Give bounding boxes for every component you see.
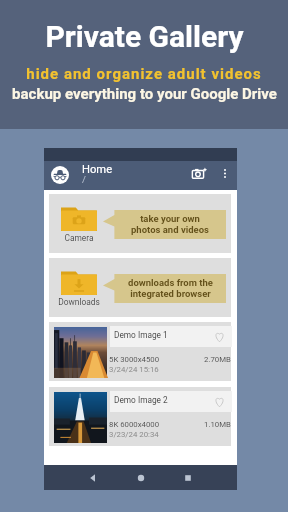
button[interactable]: Recents	[178, 468, 198, 488]
button[interactable]: Profile	[51, 166, 69, 184]
staticText: 3/24/24 15:16	[109, 365, 159, 374]
staticText: 8K 6000x4000	[109, 420, 160, 429]
staticText: /	[82, 174, 86, 185]
button[interactable]: Demo Image 2	[49, 387, 231, 446]
staticText: 2.70MB	[204, 355, 231, 364]
staticText: Private Gallery	[45, 19, 244, 54]
button[interactable]: Demo Image 1	[49, 322, 231, 381]
staticText: integrated browser	[130, 288, 211, 299]
staticText: 1.10MB	[204, 420, 231, 429]
button[interactable]: Take photo	[191, 165, 208, 182]
button[interactable]: More options	[219, 165, 231, 182]
button[interactable]: Camera	[49, 194, 231, 253]
button[interactable]: Downloads	[49, 258, 231, 317]
staticText: Demo Image 2	[114, 395, 168, 405]
staticText: hide and organize adult videos	[26, 65, 262, 83]
button[interactable]: Back	[83, 468, 103, 488]
staticText: Downloads	[58, 297, 100, 307]
button[interactable]: Favorite	[214, 331, 225, 342]
staticText: 3/23/24 20:34	[109, 430, 159, 439]
staticText: backup everything to your Google Drive	[12, 85, 277, 103]
staticText: photos and videos	[131, 224, 209, 235]
button[interactable]: Home	[131, 468, 151, 488]
staticText: take your own	[140, 213, 200, 224]
staticText: Home	[82, 163, 113, 176]
button[interactable]: Favorite	[214, 396, 225, 407]
staticText: Demo Image 1	[114, 330, 168, 340]
staticText: 5K 3000x4500	[109, 355, 160, 364]
staticText: Camera	[64, 233, 94, 243]
staticText: downloads from the	[128, 277, 213, 288]
